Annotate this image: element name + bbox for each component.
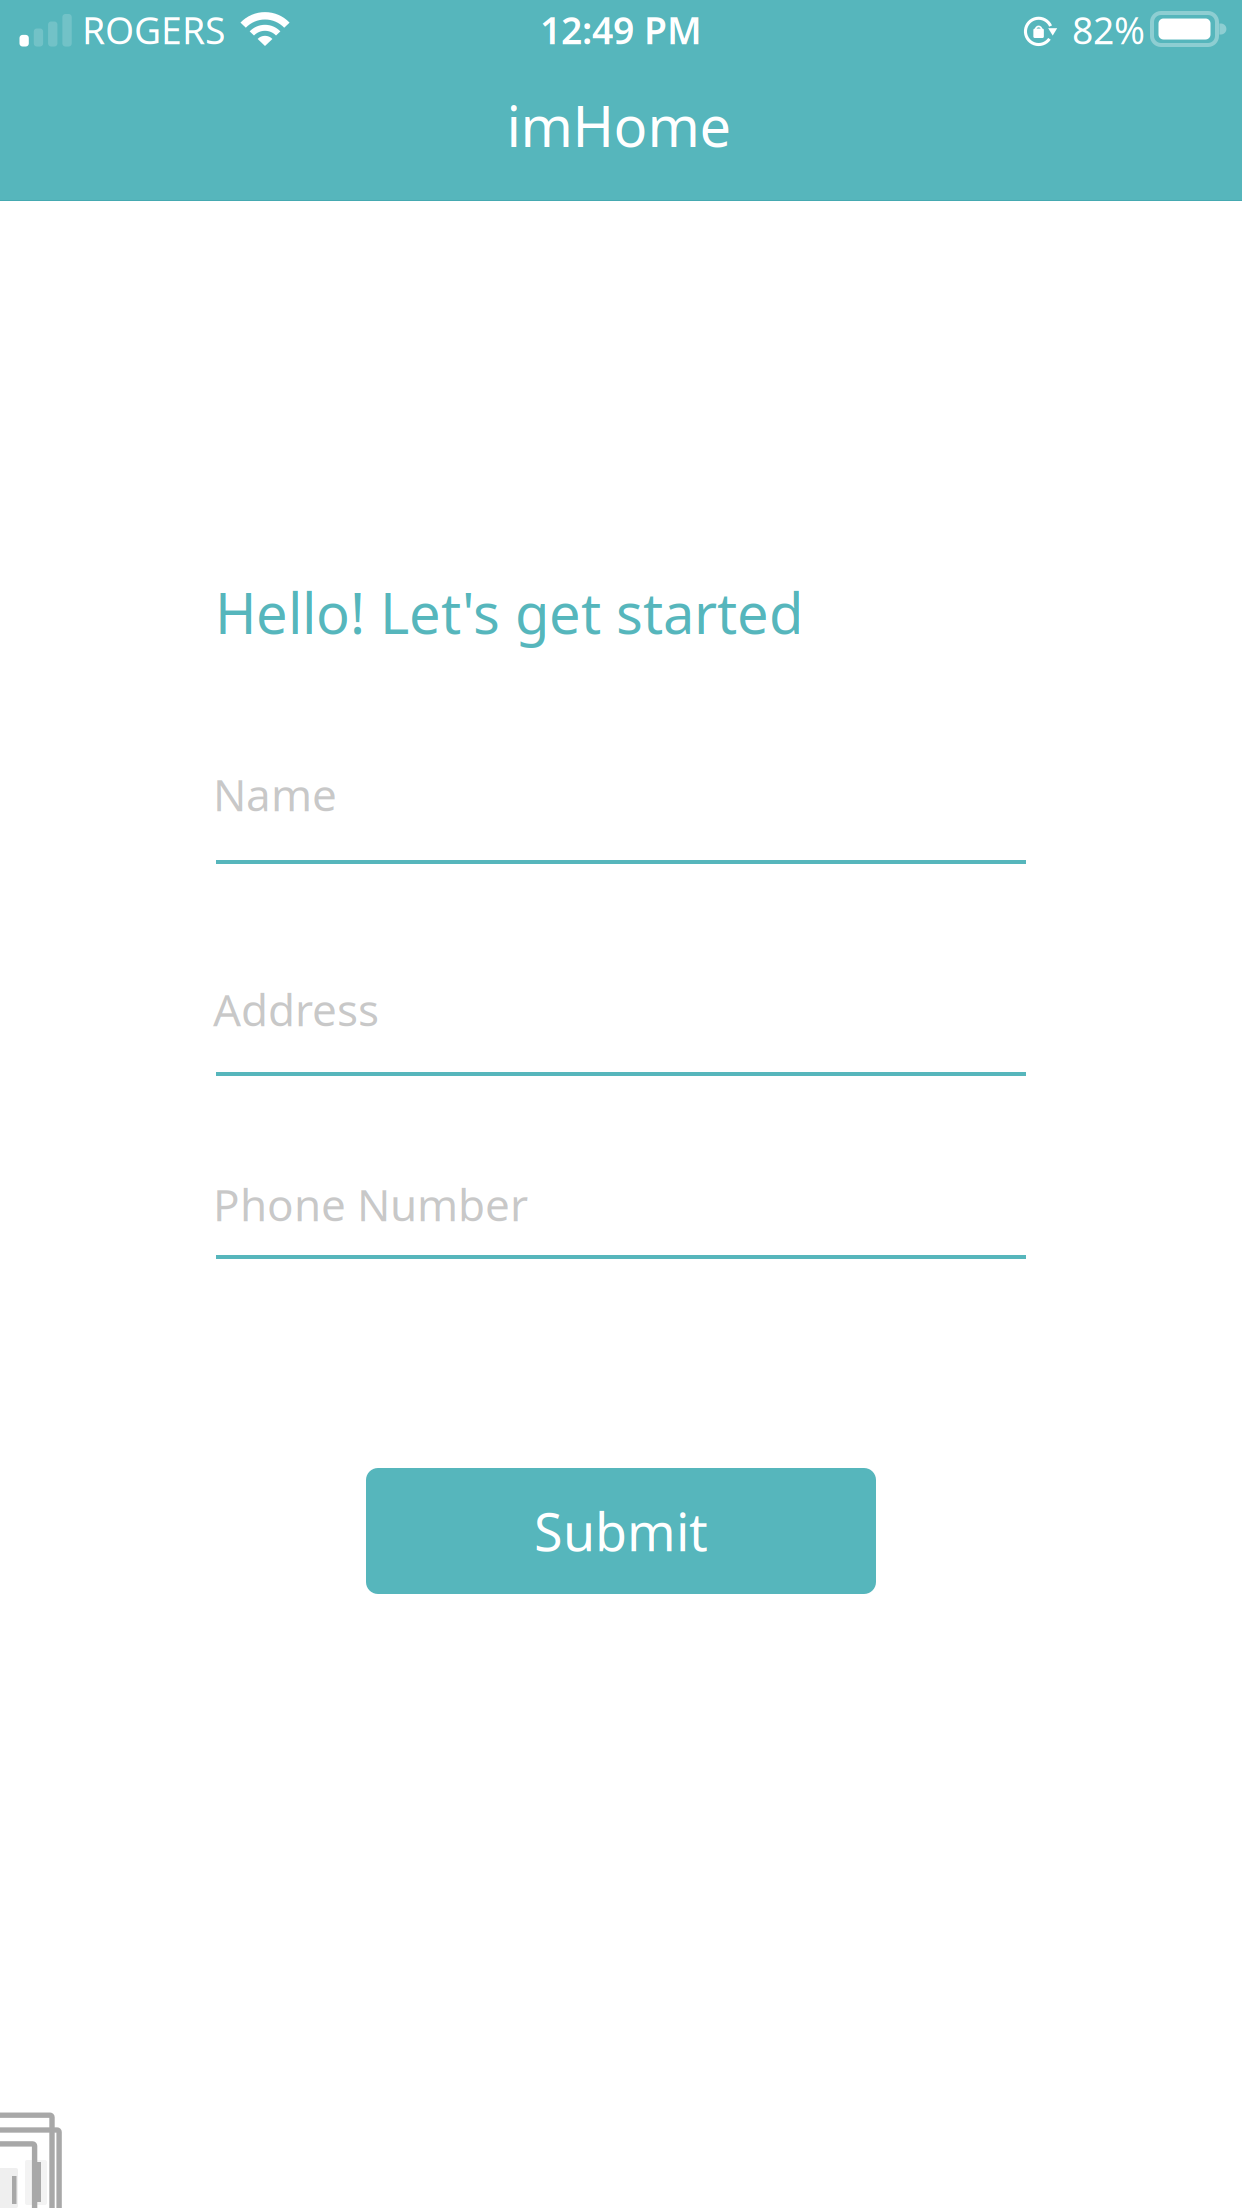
staticText: 12:49 PM [540,5,702,55]
staticText: Submit [534,1496,708,1566]
staticText: ROGERS [82,5,225,55]
button[interactable]: Address [216,980,1026,1076]
button[interactable]: Phone Number [216,1175,1026,1259]
staticText: Phone Number [213,1175,528,1233]
staticText: Hello! Let's get started [215,575,803,649]
button[interactable]: Name [216,765,1026,864]
staticText: Address [213,980,379,1038]
staticText: imHome [506,88,731,162]
button[interactable]: Submit [366,1468,876,1594]
staticText: Name [213,765,337,823]
staticText: 82% [1072,5,1145,55]
